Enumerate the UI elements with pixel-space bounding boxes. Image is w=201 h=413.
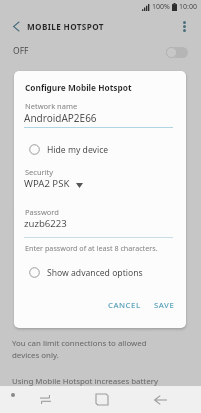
button[interactable]: Turn on Mobile Hotspot [166, 47, 188, 58]
staticText: Hide my device [47, 144, 109, 156]
button[interactable]: Recent apps [31, 386, 59, 413]
staticText: Password [25, 207, 59, 217]
staticText: 10:00 [179, 2, 197, 12]
staticText: Network name [25, 101, 78, 111]
staticText: You can limit connections to allowed [12, 338, 147, 349]
staticText: OFF [13, 45, 29, 57]
staticText: Configure Mobile Hotspot [25, 82, 132, 93]
staticText: 100% [152, 2, 170, 12]
staticText: AndroidAP2E66 [24, 111, 97, 125]
staticText: Security [25, 167, 54, 177]
button[interactable]: Back [146, 386, 174, 413]
button[interactable]: Show keyboard [4, 386, 22, 404]
button[interactable]: CANCEL [104, 295, 145, 316]
button[interactable]: WPA2 PSK [24, 177, 83, 190]
staticText: zuzb6223 [24, 217, 67, 230]
button[interactable]: Show advanced options [29, 265, 143, 280]
button[interactable]: Navigate up [4, 14, 28, 38]
button[interactable]: More options [172, 14, 196, 38]
staticText: WPA2 PSK [24, 177, 70, 190]
staticText: devices only. [12, 350, 59, 361]
staticText: Enter password of at least 8 characters. [25, 243, 158, 253]
staticText: CANCEL [108, 300, 141, 311]
staticText: MOBILE HOTSPOT [27, 21, 104, 32]
staticText: Show advanced options [47, 267, 143, 279]
button[interactable]: Hide my device [29, 142, 109, 157]
button[interactable]: Home [88, 386, 116, 413]
button[interactable]: SAVE [150, 295, 179, 316]
staticText: SAVE [154, 300, 175, 311]
staticText: Using Mobile Hotspot increases battery [12, 376, 158, 387]
